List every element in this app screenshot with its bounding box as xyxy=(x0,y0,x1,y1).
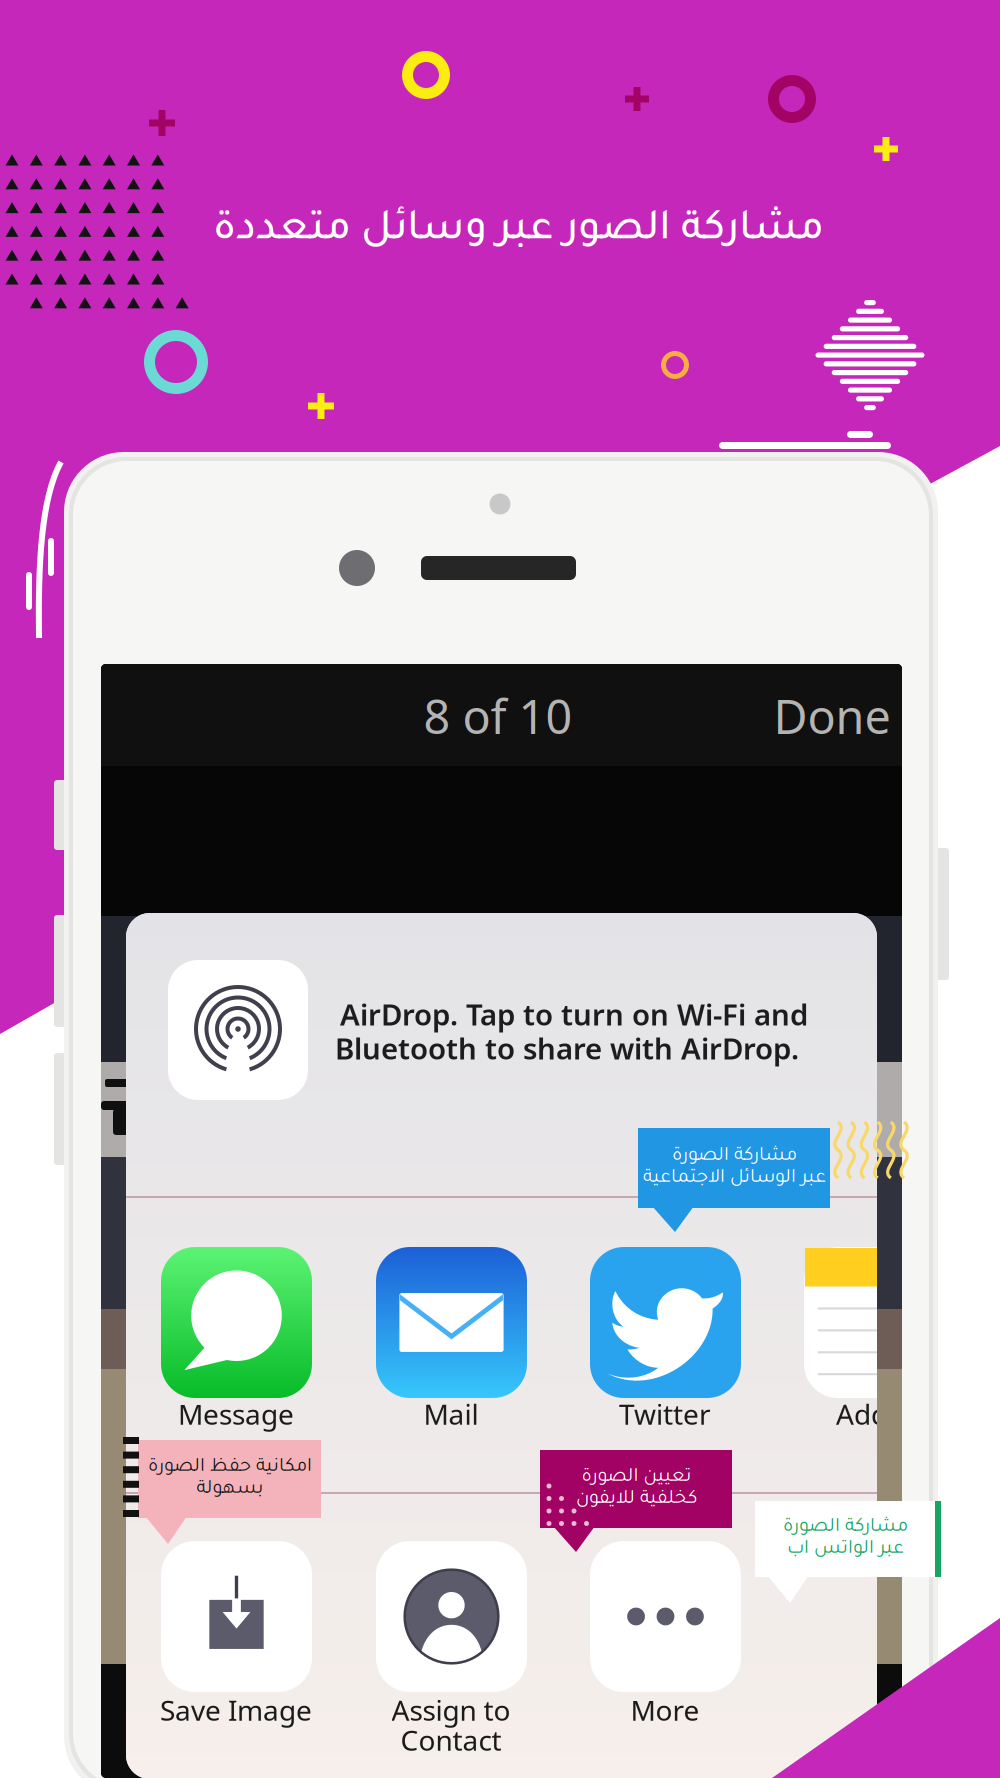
staticText: تعيين الصورة xyxy=(581,1468,691,1488)
button[interactable]: AirDrop. Tap to turn on Wi-Fi and xyxy=(126,913,877,1778)
staticText: Assign to xyxy=(391,1691,510,1729)
staticText: Mail xyxy=(423,1395,478,1433)
staticText: Twitter xyxy=(619,1395,711,1433)
staticText: Save Image xyxy=(160,1691,312,1729)
button[interactable]: Mail xyxy=(126,913,877,1778)
staticText: Contact xyxy=(400,1721,501,1759)
staticText: امكانية حفظ الصورة xyxy=(147,1458,311,1478)
staticText: مشاركة الصورة xyxy=(671,1147,796,1167)
staticText: 8 of 10 xyxy=(423,685,572,747)
staticText: Add to xyxy=(836,1395,922,1433)
button[interactable]: Save Image xyxy=(126,913,877,1778)
staticText: بسهولة xyxy=(196,1480,263,1500)
button[interactable]: Assign to xyxy=(126,913,877,1778)
staticText: مشاركة الصور عبر وسائل متعددة xyxy=(212,210,823,254)
staticText: عبر الواتس اب xyxy=(786,1540,903,1560)
staticText: More xyxy=(630,1691,699,1729)
staticText: AirDrop. Tap to turn on Wi-Fi and xyxy=(340,994,808,1033)
button[interactable]: Add to xyxy=(126,913,877,1778)
staticText: Bluetooth to share with AirDrop. xyxy=(335,1028,799,1067)
staticText: عبر الوسائل الاجتماعية xyxy=(642,1169,825,1189)
button[interactable]: Done xyxy=(0,0,1000,1778)
button[interactable]: Twitter xyxy=(126,913,877,1778)
button[interactable]: More xyxy=(126,913,877,1778)
button[interactable]: Message xyxy=(126,913,877,1778)
staticText: كخلفية للايفون xyxy=(575,1490,696,1510)
staticText: Message xyxy=(178,1395,294,1433)
staticText: Done xyxy=(773,685,890,747)
staticText: مشاركة الصورة xyxy=(782,1518,907,1538)
